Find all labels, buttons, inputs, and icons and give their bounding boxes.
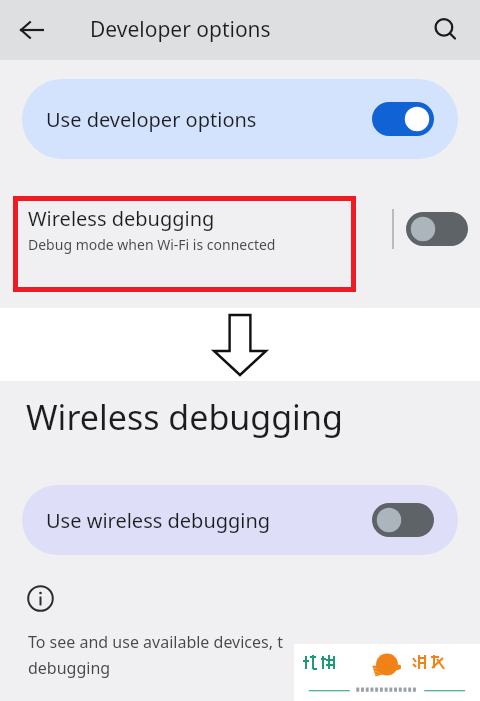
staticText: Use wireless debugging [46, 507, 372, 534]
staticText: Wireless debugging [28, 205, 215, 232]
button[interactable]: Toggle on [372, 102, 434, 136]
staticText: Debug mode when Wi-Fi is connected [28, 235, 276, 254]
button[interactable]: Toggle off [372, 503, 434, 537]
staticText: Wireless debugging [26, 394, 343, 440]
button[interactable]: Toggle off [406, 212, 468, 246]
staticText: Use developer options [46, 106, 372, 133]
button[interactable]: Back [10, 8, 54, 52]
staticText: To see and use available devices, t [28, 631, 283, 653]
button[interactable]: Wireless debugging toggle [394, 194, 480, 264]
staticText: debugging [28, 657, 111, 679]
button[interactable]: Use developer options [22, 79, 458, 159]
button[interactable]: Use wireless debugging [22, 485, 458, 555]
button[interactable]: Wireless debugging [0, 188, 480, 270]
staticText: Developer options [90, 15, 271, 44]
button[interactable]: Search [424, 8, 468, 52]
